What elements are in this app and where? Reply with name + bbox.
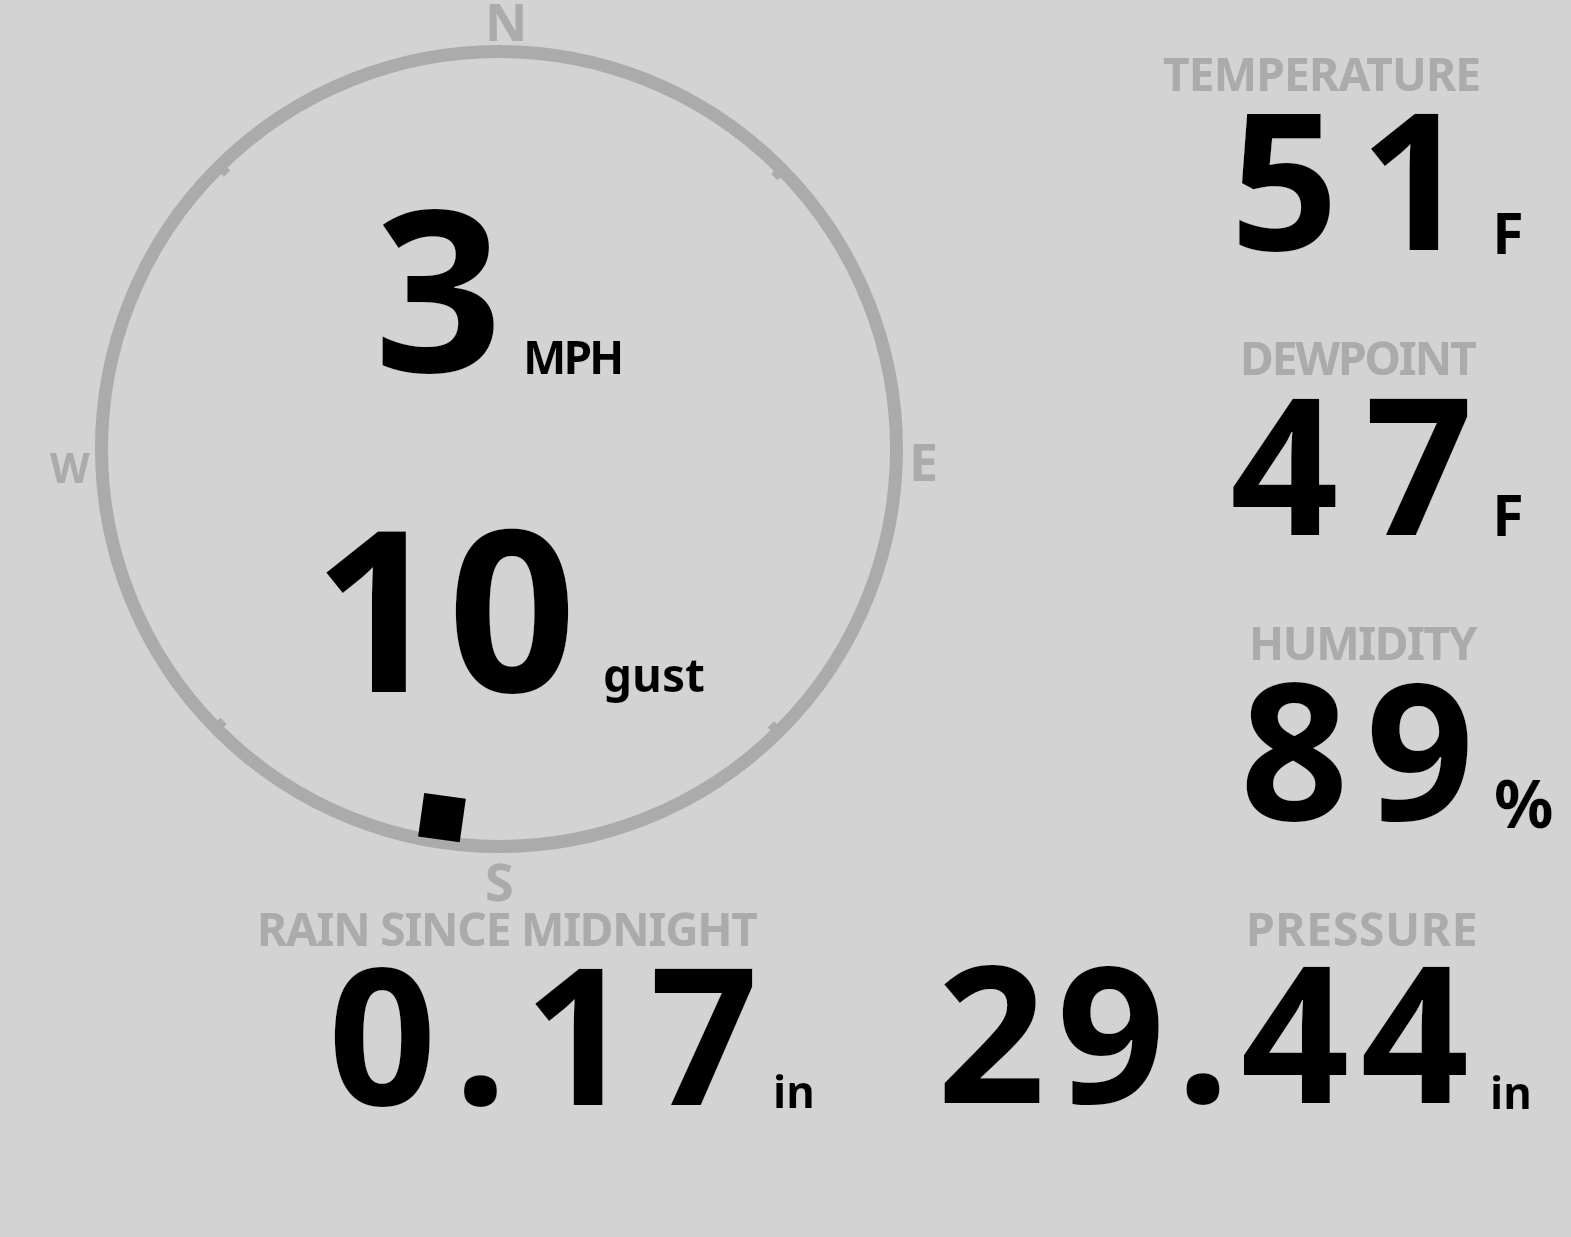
staticText: HUMIDITY <box>1249 611 1476 674</box>
staticText: PRESSURE <box>1246 897 1479 960</box>
staticText: TEMPERATURE <box>1163 42 1481 105</box>
staticText: F <box>1492 192 1524 271</box>
button[interactable]: Temperature 51 degrees Fahrenheit <box>1150 40 1570 270</box>
button[interactable]: Dewpoint 47 degrees Fahrenheit <box>1150 325 1570 555</box>
staticText: S <box>485 845 514 916</box>
staticText: in <box>773 1061 815 1121</box>
staticText: DEWPOINT <box>1240 326 1475 389</box>
staticText: 3 <box>374 131 507 437</box>
staticText: % <box>1494 757 1554 847</box>
staticText: E <box>909 425 939 496</box>
button[interactable]: Humidity 89 percent <box>1150 610 1570 840</box>
staticText: gust <box>603 643 706 706</box>
staticText: RAIN SINCE MIDNIGHT <box>257 897 757 960</box>
button[interactable]: Wind direction dial <box>96 40 906 855</box>
button[interactable]: Pressure 29.44 inches <box>935 895 1535 1120</box>
staticText: N <box>485 0 528 56</box>
button[interactable]: Rain since midnight 0.17 inches <box>250 895 830 1120</box>
staticText: 29.44 <box>937 900 1481 1159</box>
staticText: F <box>1492 474 1524 553</box>
staticText: in <box>1490 1062 1532 1122</box>
staticText: 51 <box>1230 47 1490 306</box>
staticText: 10 <box>313 451 583 757</box>
staticText: 89 <box>1240 617 1492 876</box>
staticText: W <box>50 439 90 495</box>
staticText: 0.17 <box>328 902 776 1161</box>
staticText: 47 <box>1230 332 1500 591</box>
staticText: MPH <box>523 325 622 388</box>
